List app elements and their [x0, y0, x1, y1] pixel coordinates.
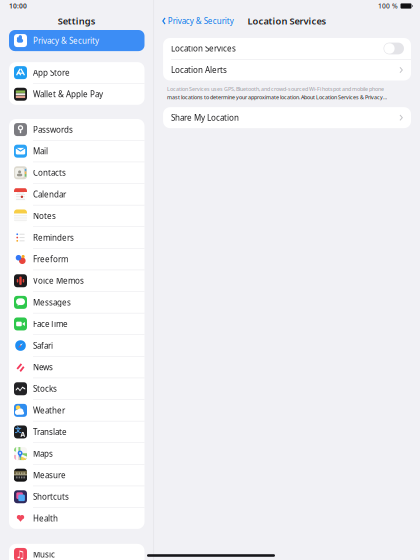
staticText: Reminders [33, 232, 74, 243]
button[interactable]: Calendar [9, 184, 144, 205]
button[interactable]: App Store [9, 62, 144, 83]
button[interactable]: Stocks [9, 378, 144, 399]
staticText: Maps [33, 448, 53, 459]
staticText: Settings [58, 15, 96, 27]
button[interactable]: Share My Location [163, 107, 411, 128]
staticText: Safari [33, 340, 53, 351]
staticText: Messages [33, 297, 71, 308]
staticText: ♫ [15, 548, 25, 560]
staticText: Measure [33, 470, 66, 480]
button[interactable]: ♫ [9, 544, 144, 560]
staticText: FaceTime [33, 319, 68, 329]
staticText: mast locations to determine your approxi… [167, 94, 387, 101]
staticText: 100 % [378, 2, 398, 10]
staticText: Privacy & Security [33, 35, 99, 46]
staticText: Voice Memos [33, 275, 84, 286]
button[interactable]: Safari [9, 335, 144, 356]
button[interactable]: Weather [9, 400, 144, 421]
button[interactable]: Measure [9, 465, 144, 486]
staticText: News [33, 362, 53, 372]
staticText: App Store [33, 67, 70, 78]
staticText: Shortcuts [33, 491, 69, 502]
staticText: A [20, 430, 25, 439]
staticText: Location Services uses GPS, Bluetooth, a… [167, 85, 384, 93]
button[interactable]: Maps [9, 443, 144, 464]
button[interactable]: Reminders [9, 227, 144, 248]
staticText: Contacts [33, 167, 66, 178]
staticText: Health [33, 513, 58, 524]
staticText: Weather [33, 405, 65, 416]
button[interactable]: Location Alerts [163, 59, 411, 80]
button[interactable]: Notes [9, 205, 144, 226]
button[interactable]: Mail [9, 141, 144, 162]
staticText: Location Services [247, 15, 326, 27]
button[interactable]: 文 [9, 421, 144, 442]
button[interactable]: Messages [9, 292, 144, 313]
staticText: Privacy & Security [168, 16, 234, 26]
button[interactable]: FaceTime [9, 313, 144, 334]
button[interactable]: Wallet & Apple Pay [9, 84, 144, 105]
button[interactable]: Voice Memos [9, 270, 144, 291]
staticText: Translate [33, 427, 67, 437]
staticText: Notes [33, 211, 56, 221]
staticText: Location Alerts [171, 65, 227, 75]
staticText: 10:00 [9, 2, 27, 10]
button[interactable]: News [9, 357, 144, 378]
button[interactable]: Health [9, 508, 144, 529]
button[interactable]: Privacy & Security [154, 14, 234, 28]
button[interactable]: Privacy & Security [9, 30, 144, 51]
staticText: Mail [33, 146, 48, 156]
button[interactable]: Location Services uses GPS, Bluetooth, a… [163, 80, 411, 107]
button[interactable]: Passwords [9, 119, 144, 140]
staticText: Music [33, 549, 55, 560]
button[interactable]: Contacts [9, 162, 144, 183]
staticText: 文 [15, 426, 22, 434]
staticText: Calendar [33, 189, 66, 200]
staticText: Location Services [171, 43, 236, 54]
staticText: Passwords [33, 124, 73, 135]
button[interactable]: Freeform [9, 249, 144, 270]
staticText: Share My Location [171, 112, 239, 123]
staticText: Stocks [33, 383, 57, 394]
button[interactable]: Location Services [163, 38, 411, 59]
button[interactable]: Shortcuts [9, 486, 144, 507]
staticText: Wallet & Apple Pay [33, 89, 103, 99]
staticText: Freeform [33, 254, 68, 264]
